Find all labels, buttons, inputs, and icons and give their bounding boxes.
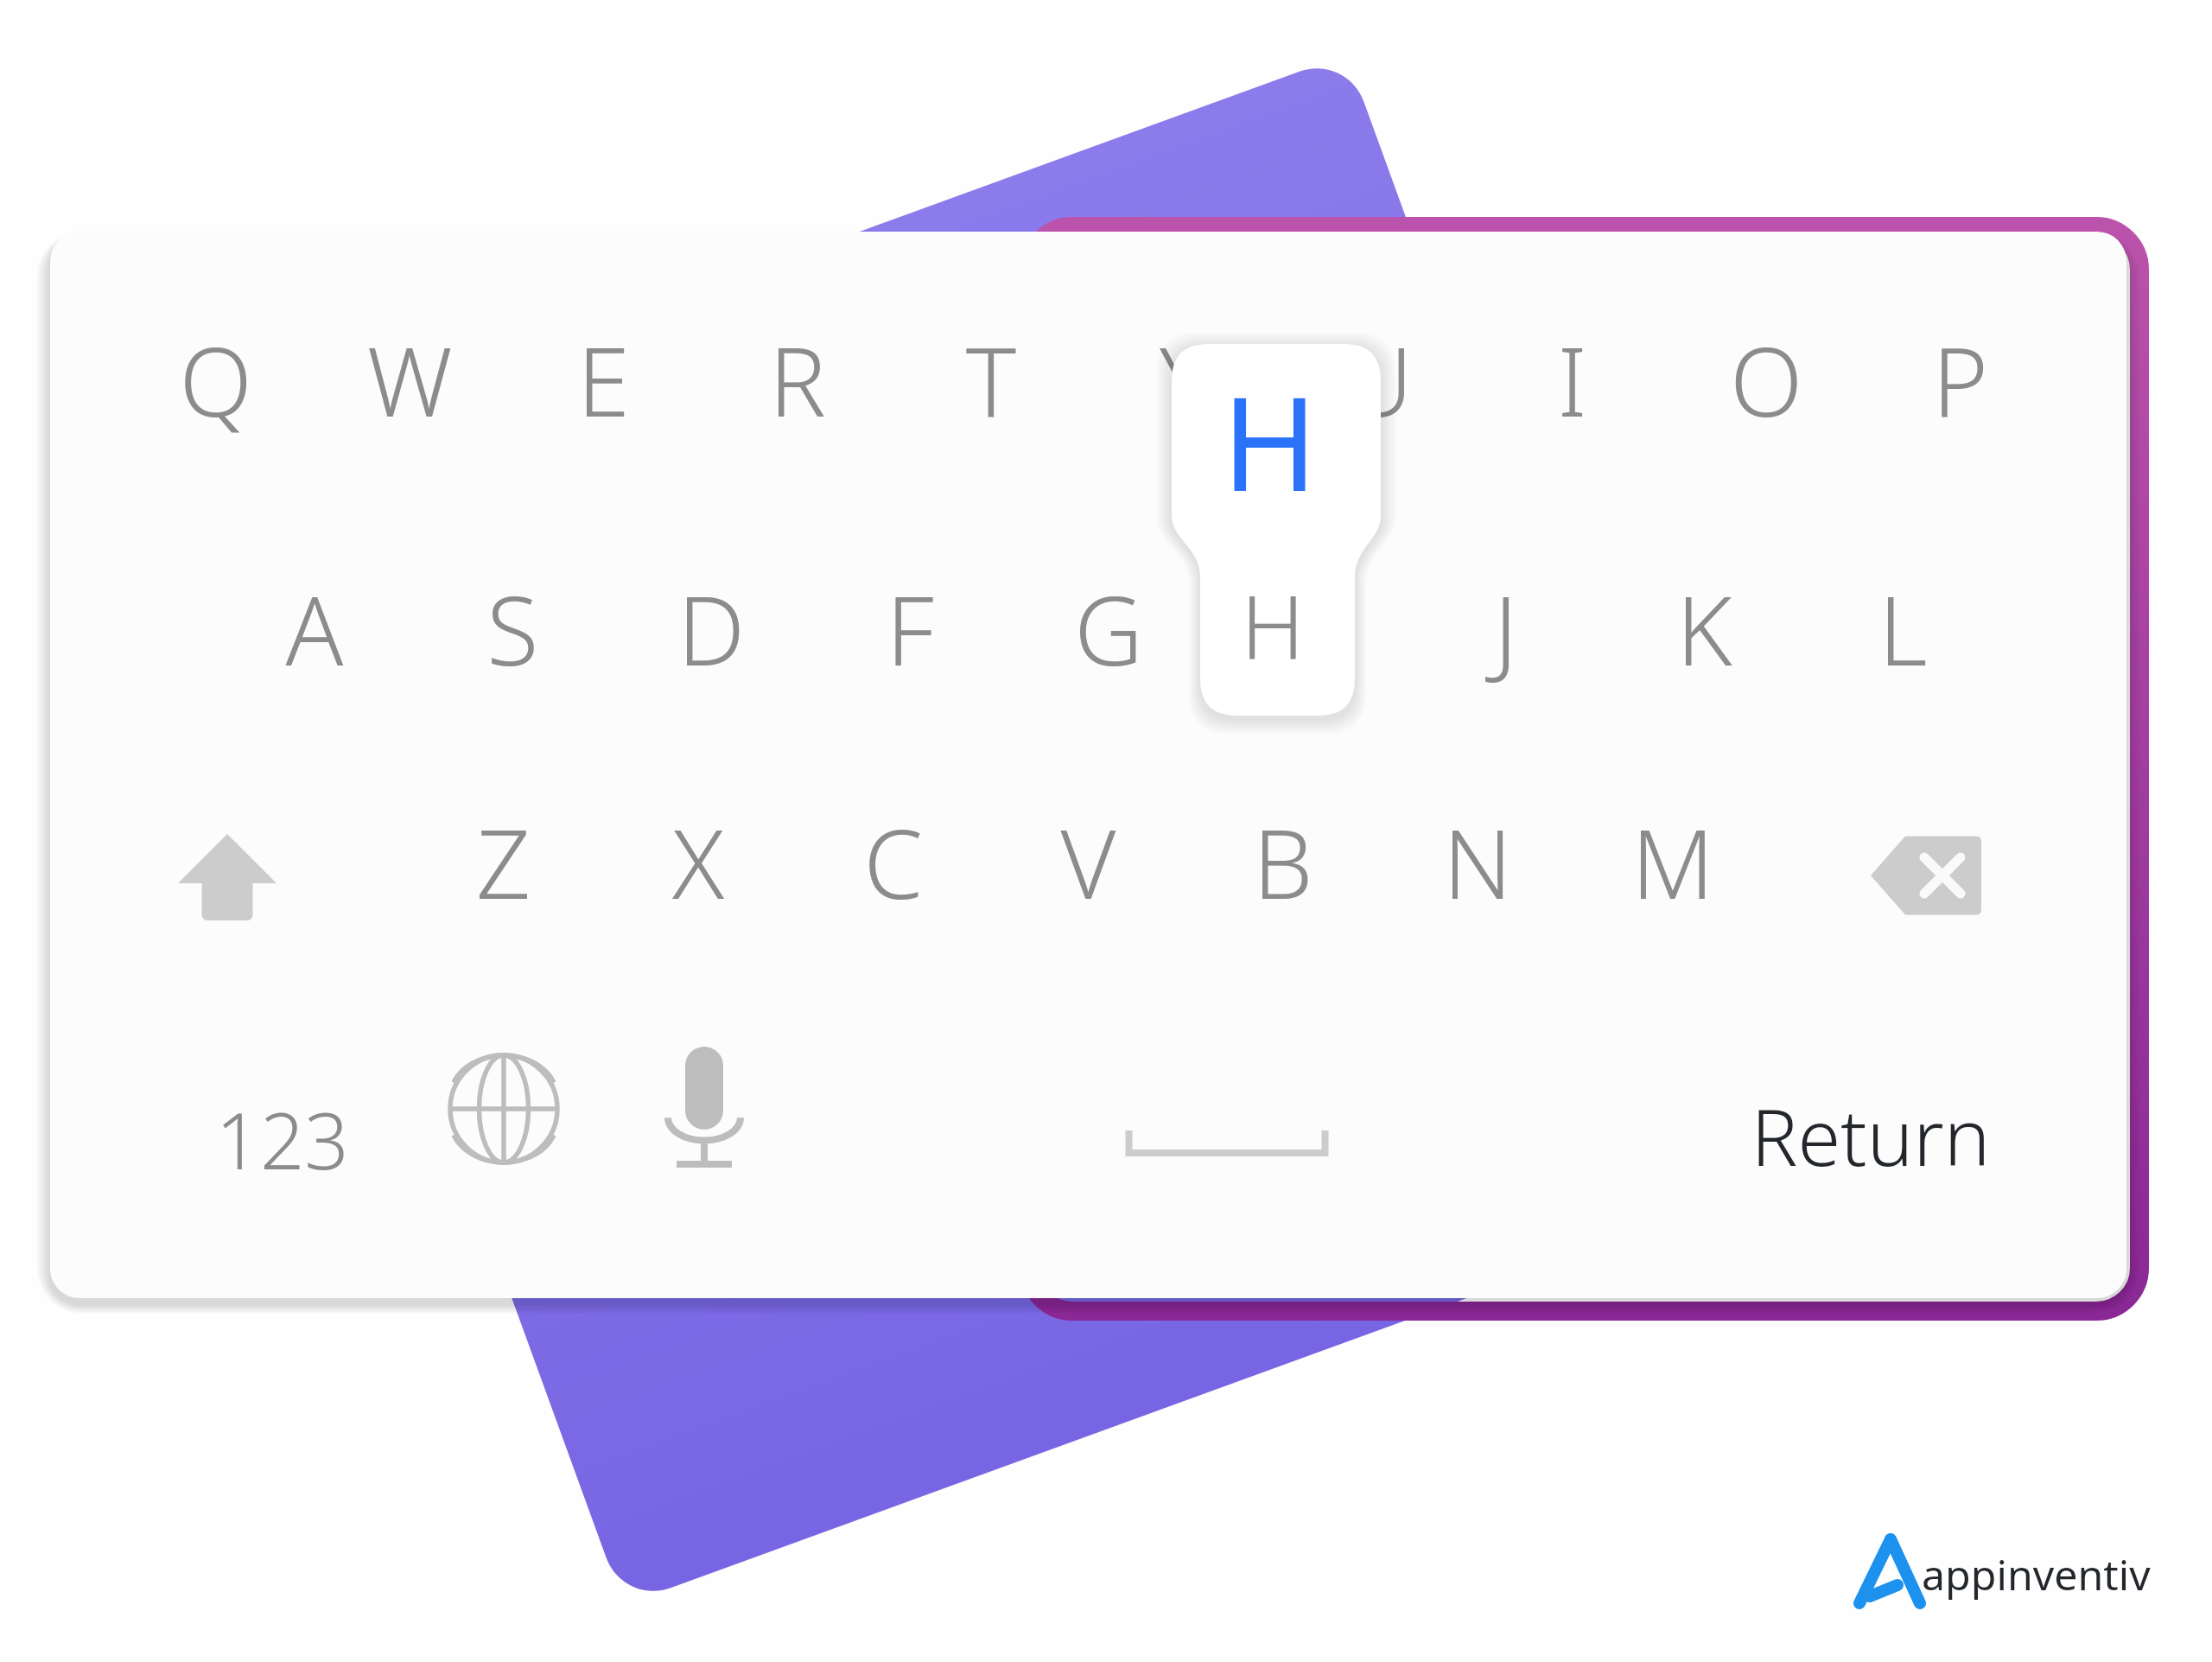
button[interactable]: Y xyxy=(1088,274,1281,490)
button[interactable]: Return xyxy=(1715,1030,2026,1246)
button[interactable]: D xyxy=(613,523,810,739)
button[interactable]: V xyxy=(991,756,1185,972)
button[interactable]: Change keyboard language xyxy=(417,1001,590,1217)
button[interactable]: T xyxy=(894,274,1088,490)
button[interactable]: E xyxy=(506,274,700,490)
button[interactable]: 123 xyxy=(183,1034,382,1250)
button[interactable]: C xyxy=(796,756,990,972)
button[interactable]: H xyxy=(1208,523,1406,739)
button[interactable]: Q xyxy=(0,0,2212,1662)
button[interactable]: G xyxy=(1009,523,1207,739)
button[interactable]: S xyxy=(414,523,612,739)
button[interactable]: W xyxy=(313,274,506,490)
button[interactable]: F xyxy=(810,523,1008,739)
button[interactable]: M xyxy=(1575,756,1770,972)
button[interactable]: B xyxy=(1185,756,1380,972)
button[interactable]: Z xyxy=(406,756,601,972)
button[interactable]: P xyxy=(1863,274,2056,490)
button[interactable]: K xyxy=(1605,523,1803,739)
button[interactable]: U xyxy=(1281,274,1475,490)
button[interactable]: Backspace xyxy=(1827,767,2025,984)
button[interactable]: Q xyxy=(119,274,313,490)
button[interactable]: J xyxy=(1407,523,1605,739)
button[interactable]: Voice input xyxy=(618,1001,791,1217)
button[interactable]: L xyxy=(1803,523,2001,739)
button[interactable]: N xyxy=(1381,756,1575,972)
button[interactable]: Shift xyxy=(128,769,327,985)
button[interactable]: Space xyxy=(968,1033,1486,1249)
button[interactable]: A xyxy=(215,523,413,739)
button[interactable]: O xyxy=(1669,274,1863,490)
button[interactable]: I xyxy=(1476,274,1669,490)
button[interactable]: R xyxy=(700,274,893,490)
button[interactable]: X xyxy=(601,756,796,972)
